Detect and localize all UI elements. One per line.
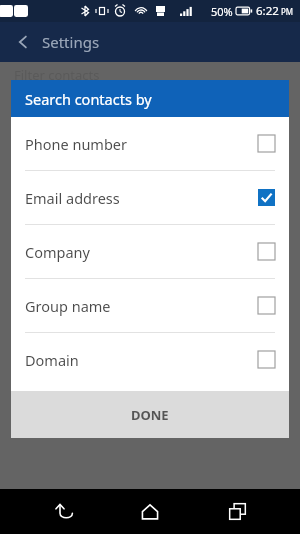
staticText: Filter contacts [14, 66, 100, 84]
button[interactable]: Recent apps [214, 489, 260, 534]
staticText: Domain [25, 350, 79, 370]
staticText: Company [25, 242, 90, 262]
staticText: Group name [25, 296, 111, 316]
button[interactable]: Back [41, 489, 87, 534]
button[interactable]: Group name [11, 279, 289, 332]
button[interactable]: Email address [11, 171, 289, 224]
button[interactable]: Back [12, 31, 34, 53]
staticText: Phone number [25, 134, 127, 154]
staticText: Search contacts by [25, 89, 152, 109]
staticText: 50% [211, 4, 233, 19]
button[interactable]: Back [0, 22, 300, 62]
staticText: PM [281, 6, 294, 17]
button[interactable]: Phone number [11, 117, 289, 170]
staticText: Settings [42, 32, 100, 52]
staticText: DONE [131, 406, 169, 424]
button[interactable]: Home [127, 489, 173, 534]
button[interactable]: DONE [11, 391, 289, 438]
staticText: Email address [25, 188, 120, 208]
button[interactable]: Company [11, 225, 289, 278]
button[interactable]: Domain [11, 333, 289, 386]
staticText: 6:22 [256, 3, 279, 19]
